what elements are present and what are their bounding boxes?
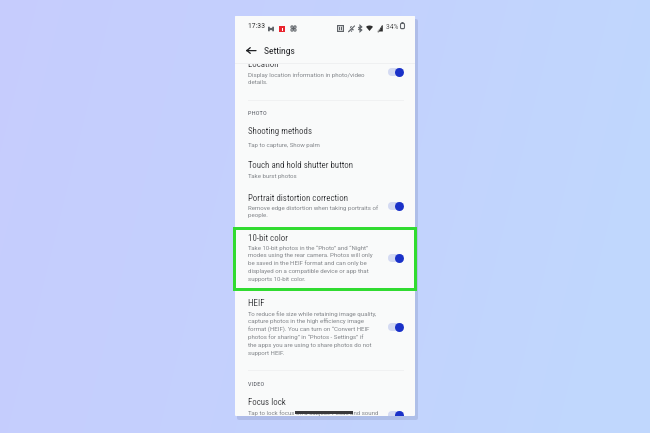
staticText: Focus lock	[248, 397, 286, 407]
staticText: Display location information in photo/vi…	[248, 71, 365, 86]
button[interactable]: Toggle	[386, 409, 405, 416]
staticText: Tap to capture, Show palm	[248, 141, 320, 148]
staticText: VIDEO	[248, 381, 265, 387]
staticText: PHOTO	[248, 110, 267, 116]
staticText: To reduce file size while retaining imag…	[248, 310, 377, 357]
staticText: Portrait distortion correction	[248, 193, 348, 203]
button[interactable]: Back	[243, 42, 259, 58]
staticText: Tap to lock focus on a subject. Focus an…	[248, 409, 379, 416]
staticText: Touch and hold shutter button	[248, 160, 354, 170]
staticText: 17:33	[248, 22, 265, 30]
staticText: Location	[248, 59, 279, 69]
staticText: Take burst photos	[248, 172, 297, 179]
staticText: Remove edge distortion when taking portr…	[248, 204, 379, 219]
button[interactable]: Toggle	[386, 200, 405, 212]
button[interactable]: Toggle	[386, 252, 405, 264]
staticText: Settings	[264, 46, 295, 56]
button[interactable]: Toggle	[386, 66, 405, 78]
button[interactable]: Toggle	[386, 321, 405, 333]
staticText: 10-bit color	[248, 233, 288, 243]
staticText: 34%	[386, 23, 399, 31]
staticText: Shooting methods	[248, 126, 312, 136]
staticText: Take 10-bit photos in the “Photo” and “N…	[248, 244, 373, 283]
staticText: HEIF	[248, 298, 265, 308]
